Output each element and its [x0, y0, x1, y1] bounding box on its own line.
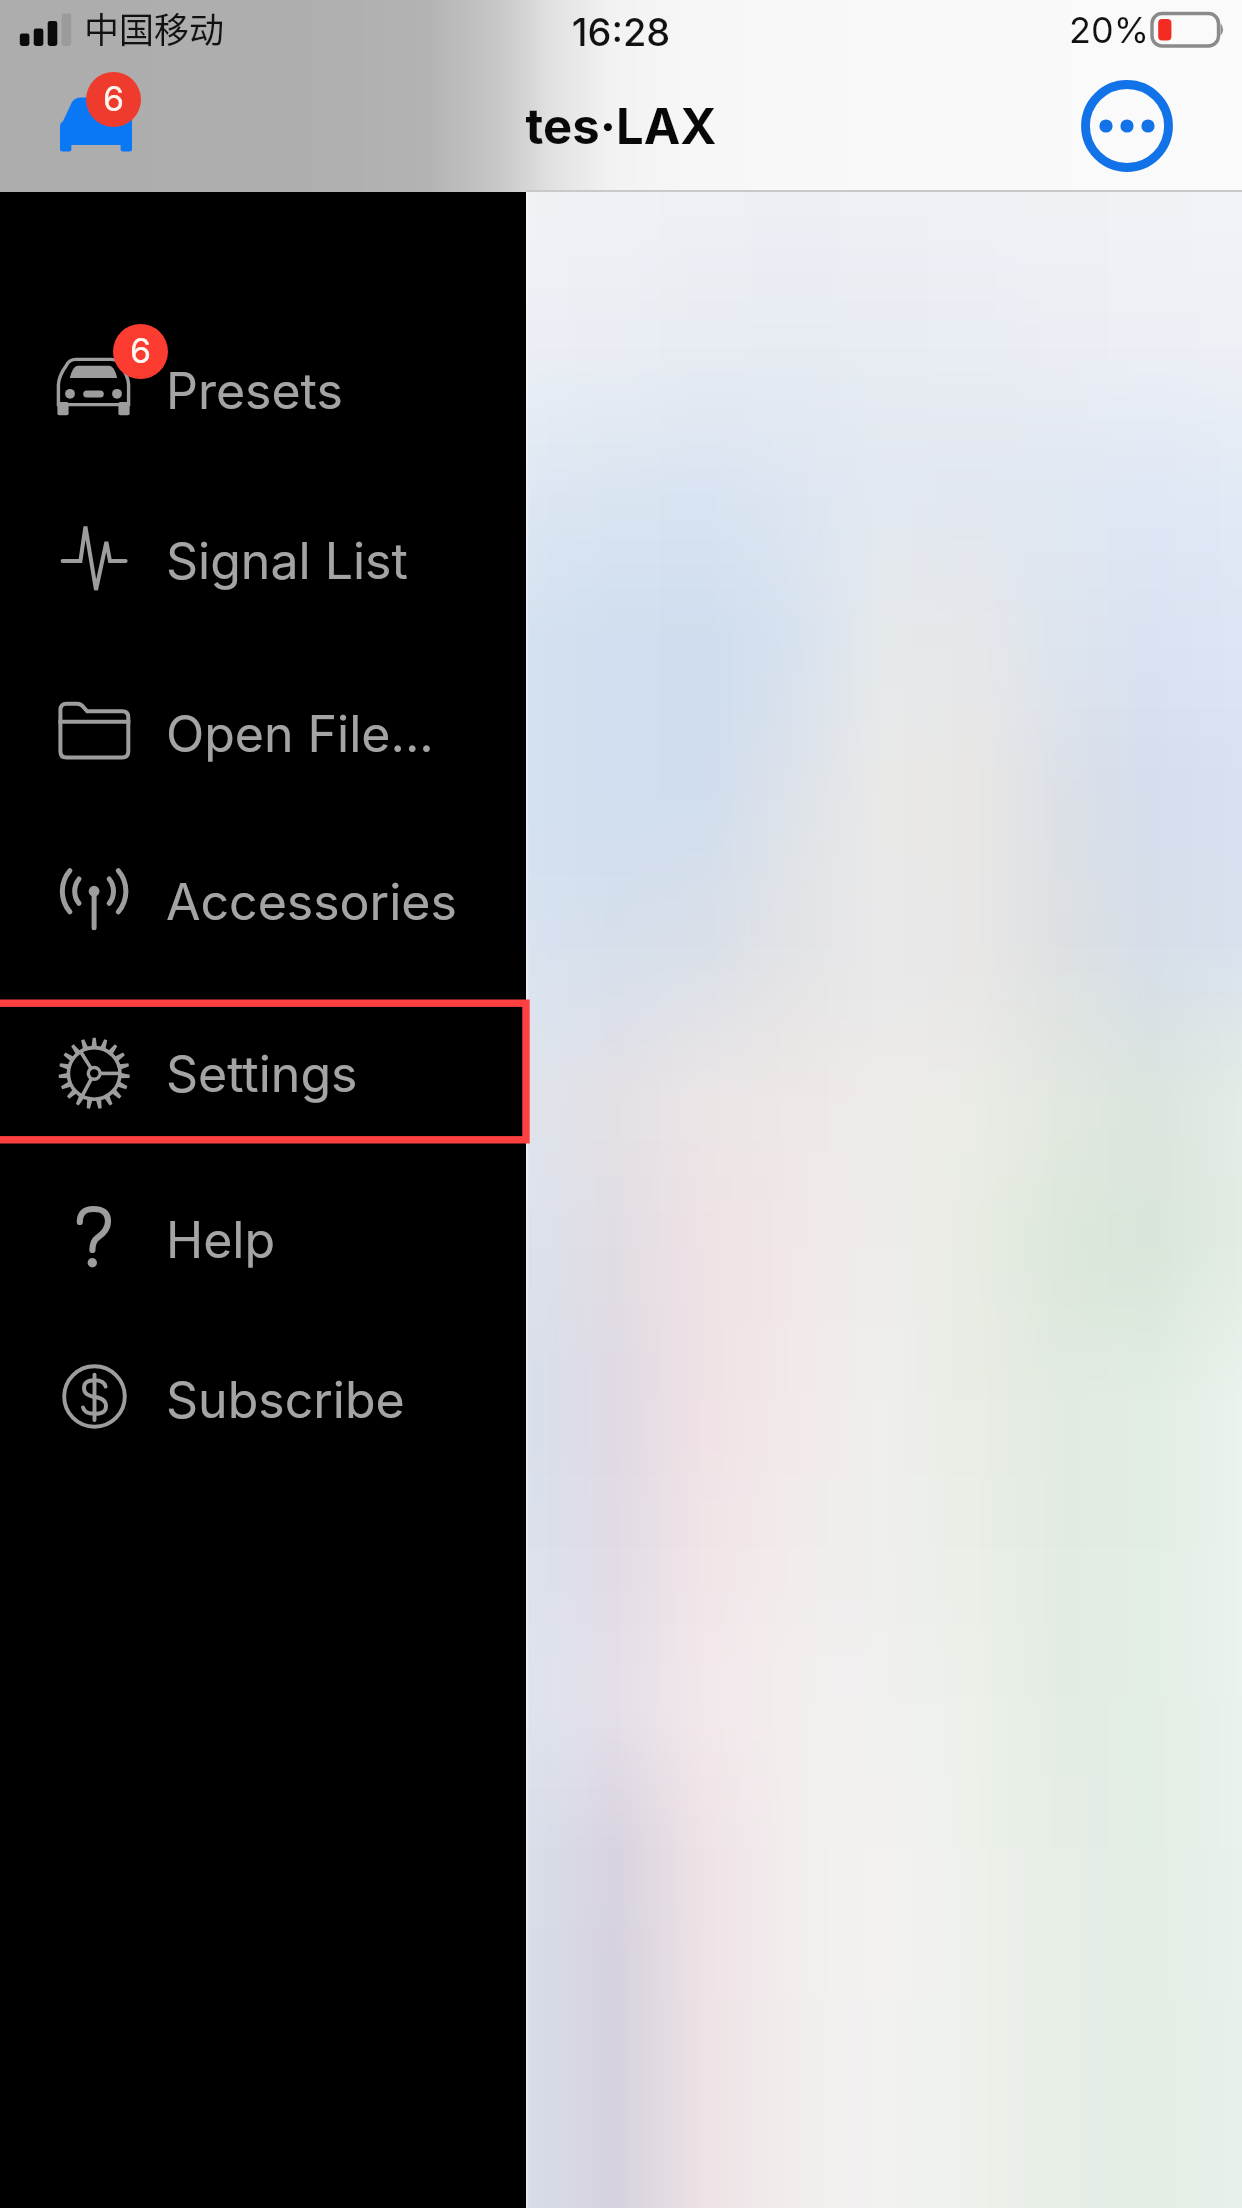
staticText: Help: [166, 1210, 276, 1270]
staticText: 6: [130, 330, 152, 371]
staticText: Open File...: [166, 704, 434, 764]
button[interactable]: 6: [0, 317, 526, 459]
button[interactable]: Signal List: [0, 487, 526, 629]
staticText: Settings: [166, 1044, 358, 1104]
button[interactable]: Open File...: [0, 660, 526, 802]
staticText: Accessories: [166, 872, 457, 932]
staticText: 20%: [1069, 8, 1150, 52]
staticText: Presets: [166, 361, 343, 421]
button[interactable]: Vehicle presets: [58, 70, 144, 154]
button[interactable]: Accessories: [0, 828, 526, 970]
staticText: 6: [103, 78, 125, 119]
staticText: Signal List: [166, 531, 408, 591]
staticText: 中国移动: [84, 2, 225, 53]
button[interactable]: Subscribe: [0, 1326, 526, 1468]
staticText: tes·LAX: [0, 97, 1242, 156]
button[interactable]: Settings: [0, 1000, 526, 1142]
staticText: 16:28: [0, 9, 1242, 55]
button[interactable]: Help: [0, 1166, 526, 1308]
staticText: Subscribe: [166, 1370, 405, 1430]
button[interactable]: More options: [1080, 79, 1174, 173]
